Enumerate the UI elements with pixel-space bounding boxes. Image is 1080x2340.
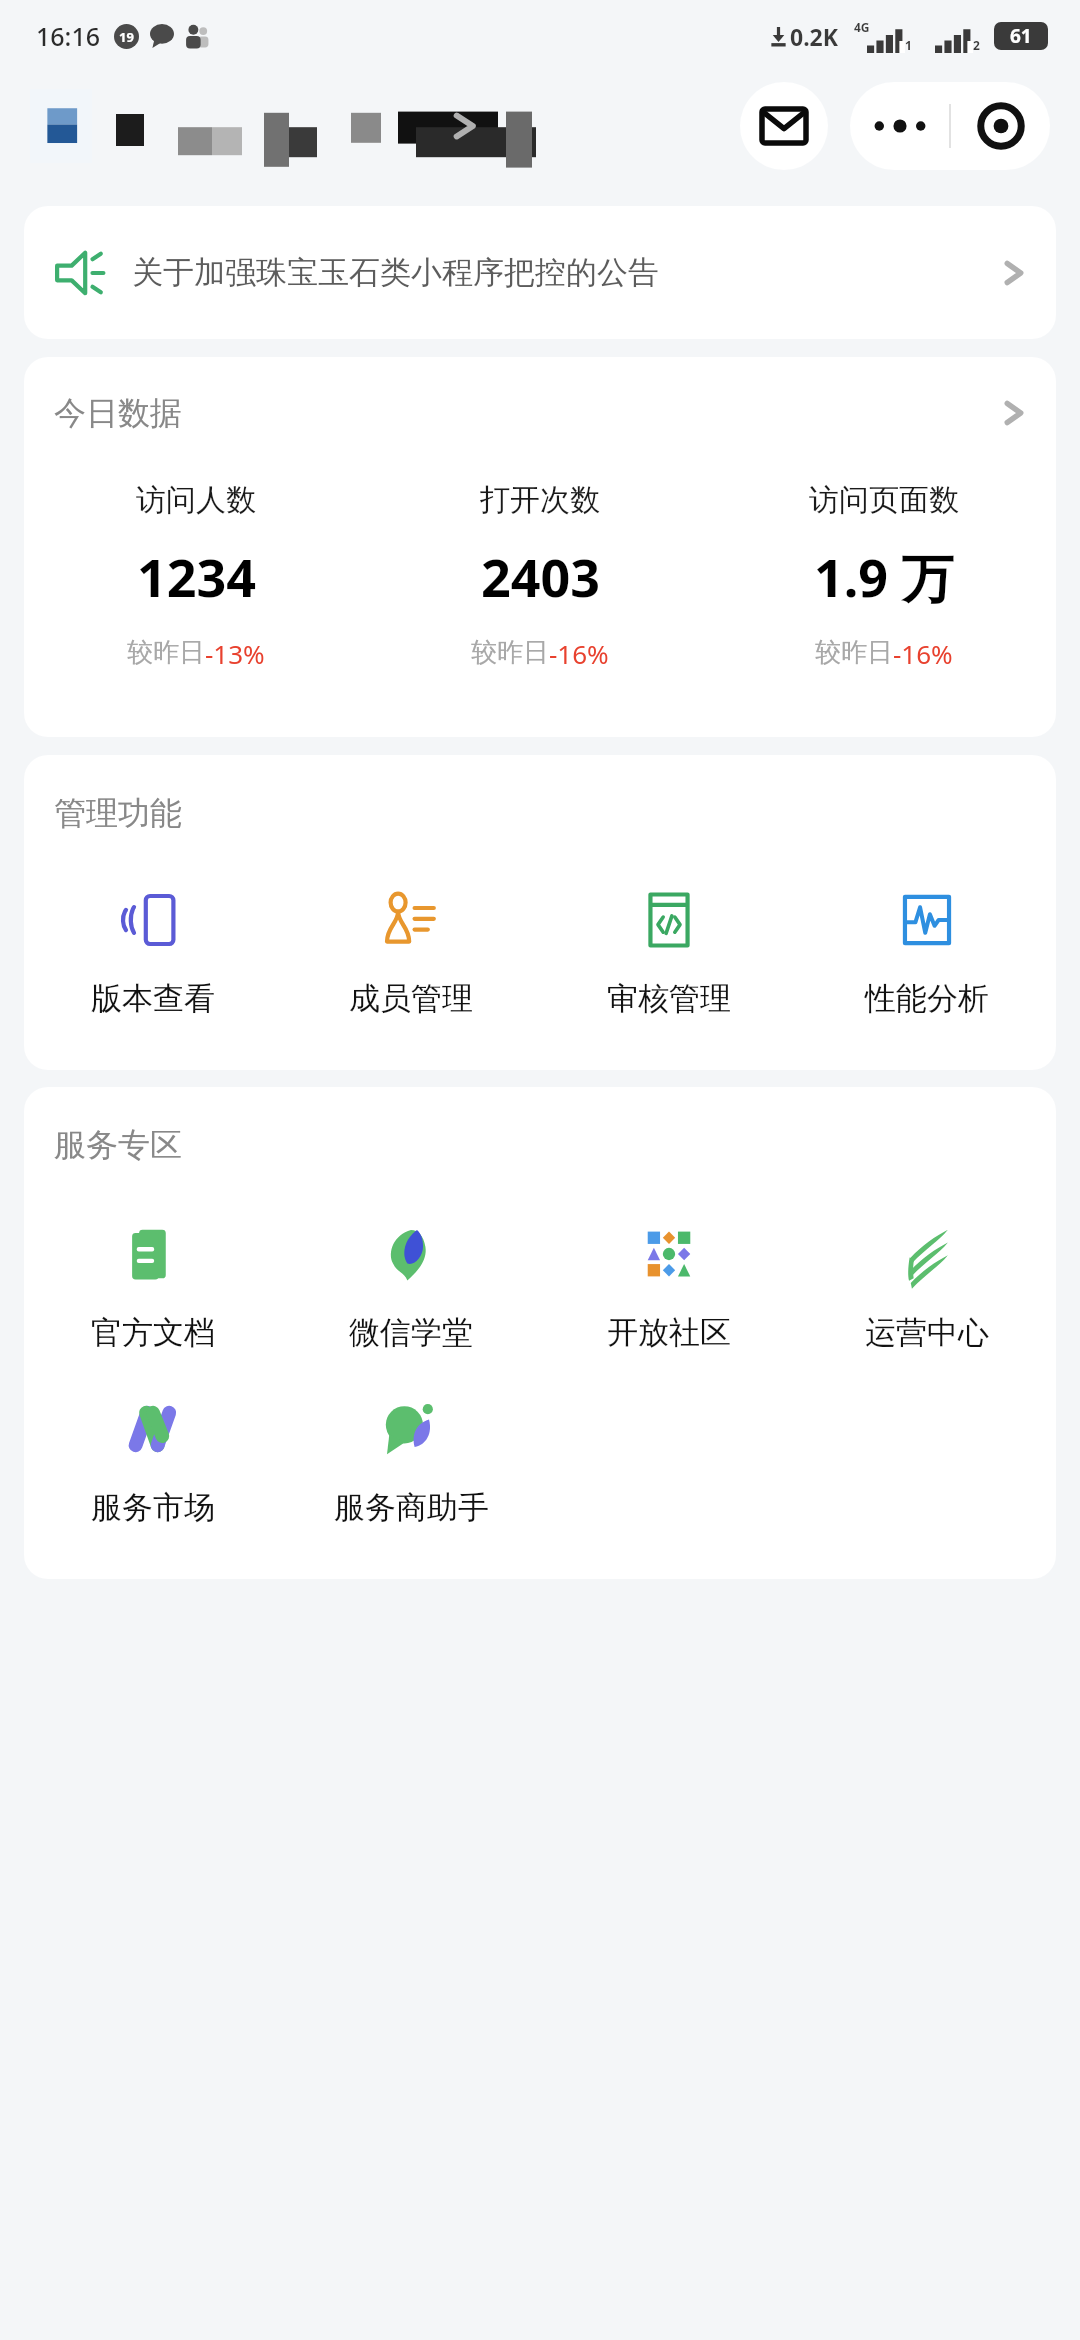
staticText: 微信学堂 — [349, 1313, 473, 1352]
button[interactable]: 性能分析 — [798, 887, 1056, 1018]
staticText: 管理功能 — [54, 793, 182, 833]
button[interactable]: 今日数据 — [24, 357, 1056, 469]
staticText: 4G — [854, 19, 870, 35]
staticText: -13% — [205, 636, 265, 671]
staticText: -16% — [893, 636, 953, 671]
staticText: 较昨日 — [815, 636, 893, 669]
staticText: 访问页面数 — [809, 481, 959, 519]
staticText: 开放社区 — [607, 1313, 731, 1352]
staticText: 访问人数 — [136, 481, 256, 519]
staticText: 2403 — [481, 541, 600, 612]
staticText: -16% — [549, 636, 609, 671]
staticText: 服务商助手 — [334, 1488, 489, 1527]
button[interactable]: 关于加强珠宝玉石类小程序把控的公告 — [24, 206, 1056, 339]
staticText: 官方文档 — [91, 1313, 215, 1352]
staticText: 关于加强珠宝玉石类小程序把控的公告 — [132, 253, 988, 292]
button[interactable]: 访问页面数 — [712, 481, 1056, 671]
staticText: 19 — [119, 28, 134, 46]
staticText: 性能分析 — [865, 979, 989, 1018]
staticText: 服务市场 — [91, 1488, 215, 1527]
staticText: 今日数据 — [54, 393, 182, 433]
button[interactable]: 访问人数 — [24, 481, 368, 671]
staticText: 1.9 万 — [814, 541, 954, 612]
button[interactable]: 服务市场 — [24, 1396, 282, 1527]
staticText: 运营中心 — [865, 1313, 989, 1352]
staticText: 成员管理 — [349, 979, 473, 1018]
button[interactable]: 版本查看 — [24, 887, 282, 1018]
staticText: 2 — [973, 37, 980, 53]
staticText: 61 — [1010, 23, 1032, 49]
staticText: 1 — [905, 37, 912, 53]
staticText: 16:16 — [36, 19, 101, 53]
button[interactable]: 微信学堂 — [282, 1221, 540, 1352]
button[interactable]: Close — [951, 82, 1050, 170]
staticText: 打开次数 — [480, 481, 600, 519]
button[interactable]: More — [850, 82, 949, 170]
staticText: 版本查看 — [91, 979, 215, 1018]
button[interactable]: 服务商助手 — [282, 1396, 540, 1527]
staticText: 1234 — [137, 541, 256, 612]
button[interactable] — [30, 89, 724, 163]
button[interactable]: Messages — [740, 82, 828, 170]
staticText: 较昨日 — [471, 636, 549, 669]
button[interactable]: 打开次数 — [368, 481, 712, 671]
button[interactable]: 官方文档 — [24, 1221, 282, 1352]
button[interactable]: 审核管理 — [540, 887, 798, 1018]
staticText: 审核管理 — [607, 979, 731, 1018]
button[interactable]: 开放社区 — [540, 1221, 798, 1352]
staticText: 0.2K — [790, 21, 839, 52]
button[interactable]: 成员管理 — [282, 887, 540, 1018]
staticText: 较昨日 — [127, 636, 205, 669]
staticText: 服务专区 — [54, 1125, 182, 1165]
button[interactable]: 运营中心 — [798, 1221, 1056, 1352]
